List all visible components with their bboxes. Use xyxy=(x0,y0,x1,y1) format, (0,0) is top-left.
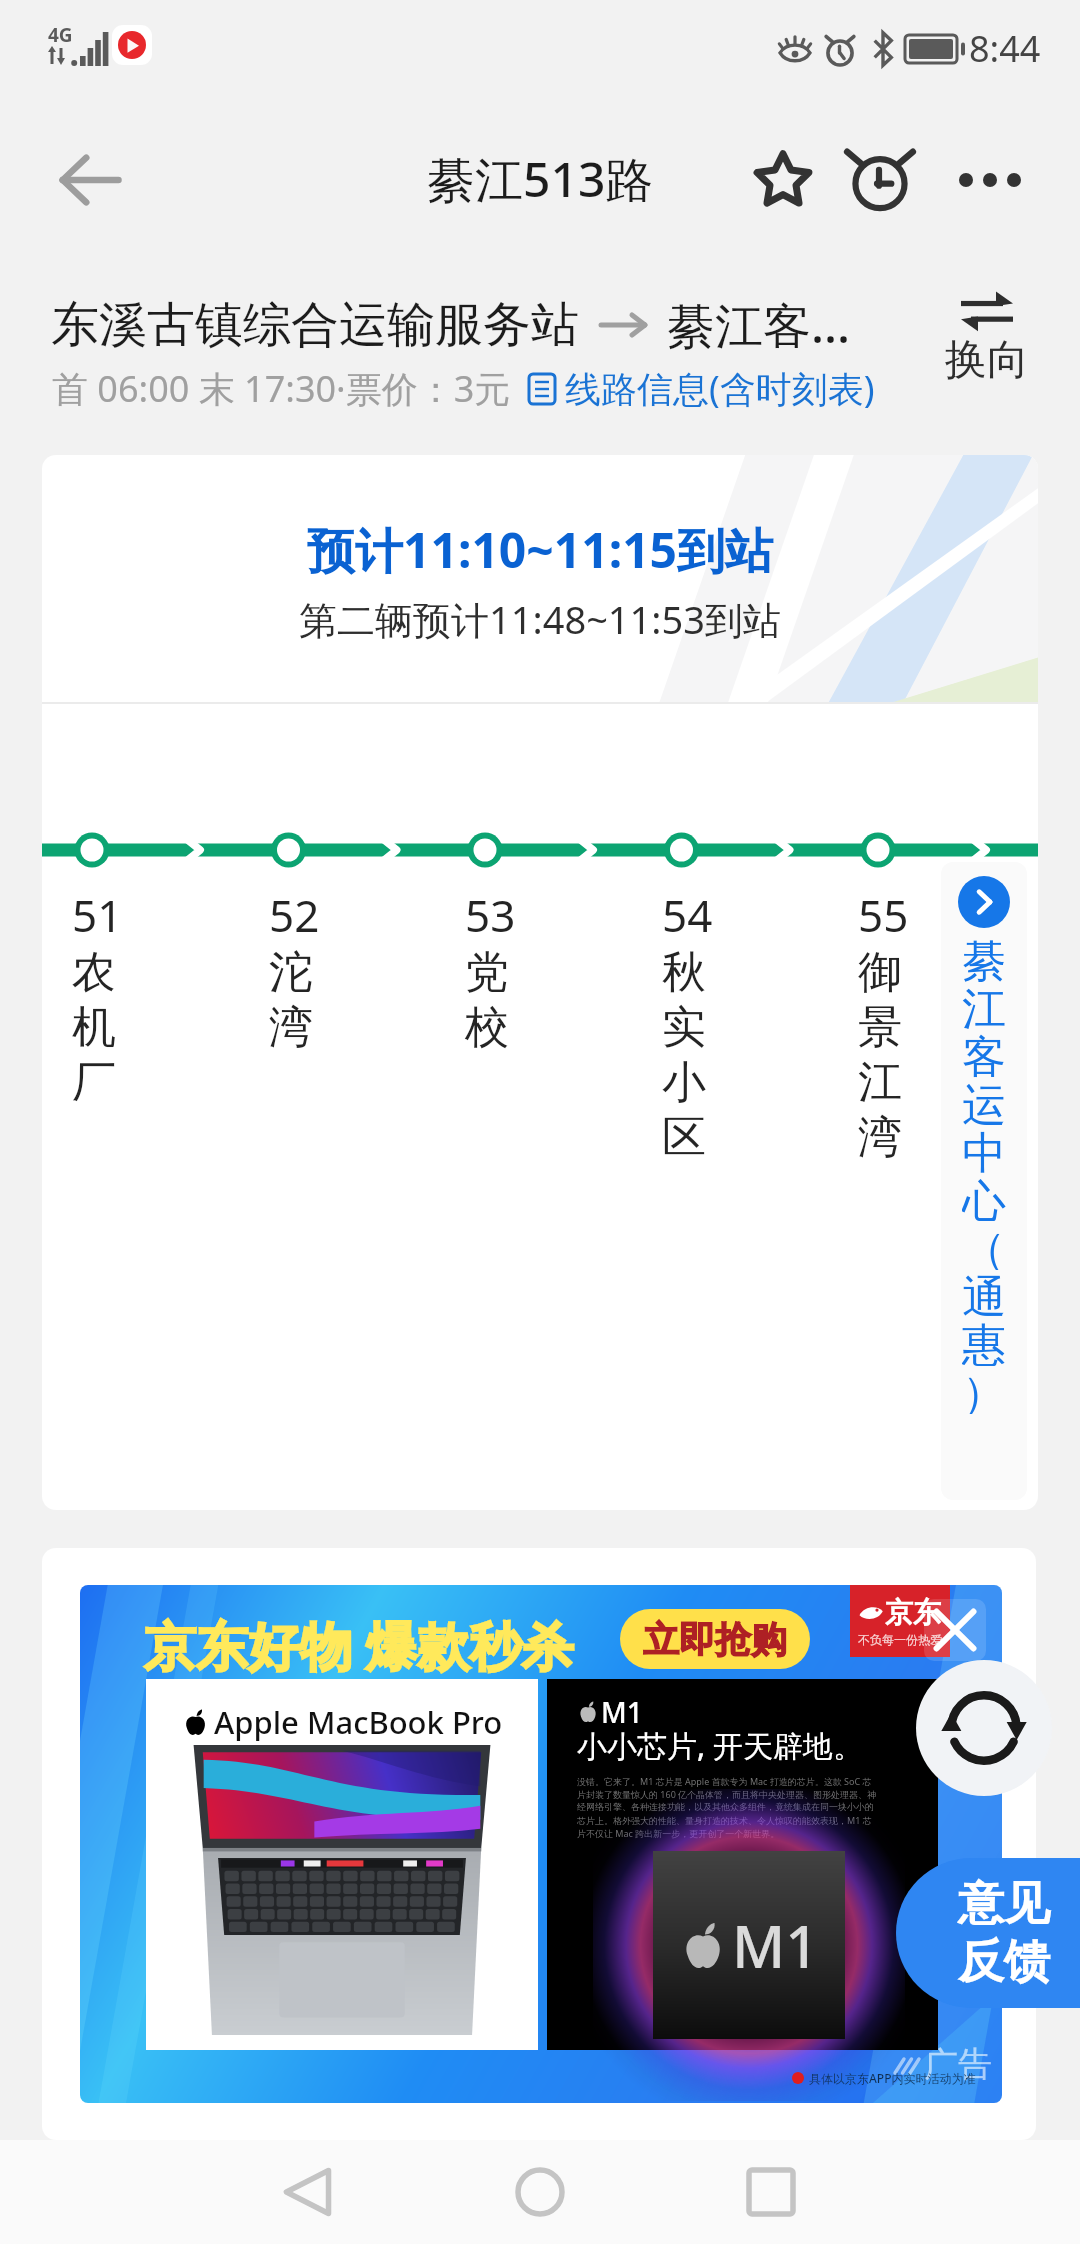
button[interactable]: Close ad xyxy=(922,1597,988,1663)
staticText: 沱 xyxy=(269,945,313,1000)
staticText: 秋 xyxy=(662,945,706,1000)
button[interactable]: 54 xyxy=(662,885,782,1165)
staticText: （ xyxy=(962,1222,1006,1270)
staticText: 54 xyxy=(662,885,713,945)
staticText: M1 xyxy=(732,1906,819,1985)
button[interactable]: Reverse direction xyxy=(912,294,1062,387)
staticText: 不负每一份热爱 xyxy=(858,1632,942,1647)
button[interactable]: Back xyxy=(263,2147,353,2237)
button[interactable]: Home xyxy=(495,2147,585,2237)
staticText: 预计11:10~11:15到站 xyxy=(307,517,774,583)
staticText: 农 xyxy=(72,945,116,1000)
button[interactable]: 綦江客运中心（通惠） xyxy=(941,862,1027,1500)
staticText: 綦江513路 xyxy=(427,146,654,212)
staticText: 小小芯片, 开天辟地。 xyxy=(577,1725,863,1766)
staticText: 换向 xyxy=(945,334,1029,387)
button[interactable]: 55 xyxy=(858,885,978,1165)
button[interactable]: Alarm xyxy=(834,134,926,226)
staticText: 55 xyxy=(858,885,909,945)
button[interactable]: 51 xyxy=(72,885,192,1110)
button[interactable]: 52 xyxy=(269,885,389,1055)
button[interactable]: More options xyxy=(944,134,1036,226)
staticText: 京东 xyxy=(885,1595,941,1630)
staticText: 京东好物 爆款秒杀 xyxy=(144,1609,574,1680)
staticText: 校 xyxy=(465,1000,509,1055)
staticText: Apple MacBook Pro xyxy=(214,1701,503,1743)
staticText: 8:44 xyxy=(969,24,1041,73)
staticText: 江 xyxy=(858,1055,902,1110)
staticText: 中 xyxy=(962,1126,1006,1174)
staticText: 线路信息(含时刻表) xyxy=(565,364,875,413)
staticText: 实 xyxy=(662,1000,706,1055)
staticText: M1 xyxy=(601,1693,643,1731)
staticText: 53 xyxy=(465,885,516,945)
button[interactable]: 意见 xyxy=(896,1858,1080,2008)
button[interactable]: 53 xyxy=(465,885,585,1055)
staticText: 首 06:00 末 17:30·票价：3元 xyxy=(52,364,511,413)
staticText: 江 xyxy=(962,982,1006,1030)
staticText: 綦 xyxy=(962,934,1006,982)
button[interactable]: Favorite xyxy=(737,134,829,226)
staticText: 广告 xyxy=(924,2043,992,2086)
staticText: 区 xyxy=(662,1110,706,1165)
staticText: 机 xyxy=(72,1000,116,1055)
staticText: 客 xyxy=(962,1030,1006,1078)
button[interactable]: Back xyxy=(44,134,136,226)
staticText: 没错。它来了。M1 芯片是 Apple 首款专为 Mac 打造的芯片。这款 So… xyxy=(577,1775,877,1839)
staticText: 惠 xyxy=(962,1318,1006,1366)
button[interactable]: 线路信息(含时刻表) xyxy=(527,364,875,413)
button[interactable]: Recent apps xyxy=(726,2147,816,2237)
staticText: 东溪古镇综合运输服务站 xyxy=(51,295,579,355)
button[interactable]: Refresh xyxy=(916,1660,1052,1796)
staticText: 52 xyxy=(269,885,320,945)
staticText: 反馈 xyxy=(958,1933,1050,1991)
staticText: 意见 xyxy=(958,1875,1050,1933)
button[interactable]: 京东好物 爆款秒杀 xyxy=(80,1585,1002,2103)
staticText: 第二辆预计11:48~11:53到站 xyxy=(299,593,781,645)
staticText: 湾 xyxy=(858,1110,902,1165)
staticText: 立即抢购 xyxy=(643,1617,787,1662)
staticText: 运 xyxy=(962,1078,1006,1126)
staticText: 通 xyxy=(962,1270,1006,1318)
staticText: 厂 xyxy=(72,1055,116,1110)
staticText: 御 xyxy=(858,945,902,1000)
staticText: 具体以京东APP内实时活动为准 xyxy=(809,2070,976,2086)
staticText: 湾 xyxy=(269,1000,313,1055)
staticText: 小 xyxy=(662,1055,706,1110)
staticText: ） xyxy=(962,1366,1006,1414)
staticText: 綦江客... xyxy=(667,292,851,358)
staticText: 4G xyxy=(48,22,73,48)
staticText: 党 xyxy=(465,945,509,1000)
staticText: 心 xyxy=(962,1174,1006,1222)
staticText: 51 xyxy=(72,885,123,945)
staticText: 景 xyxy=(858,1000,902,1055)
